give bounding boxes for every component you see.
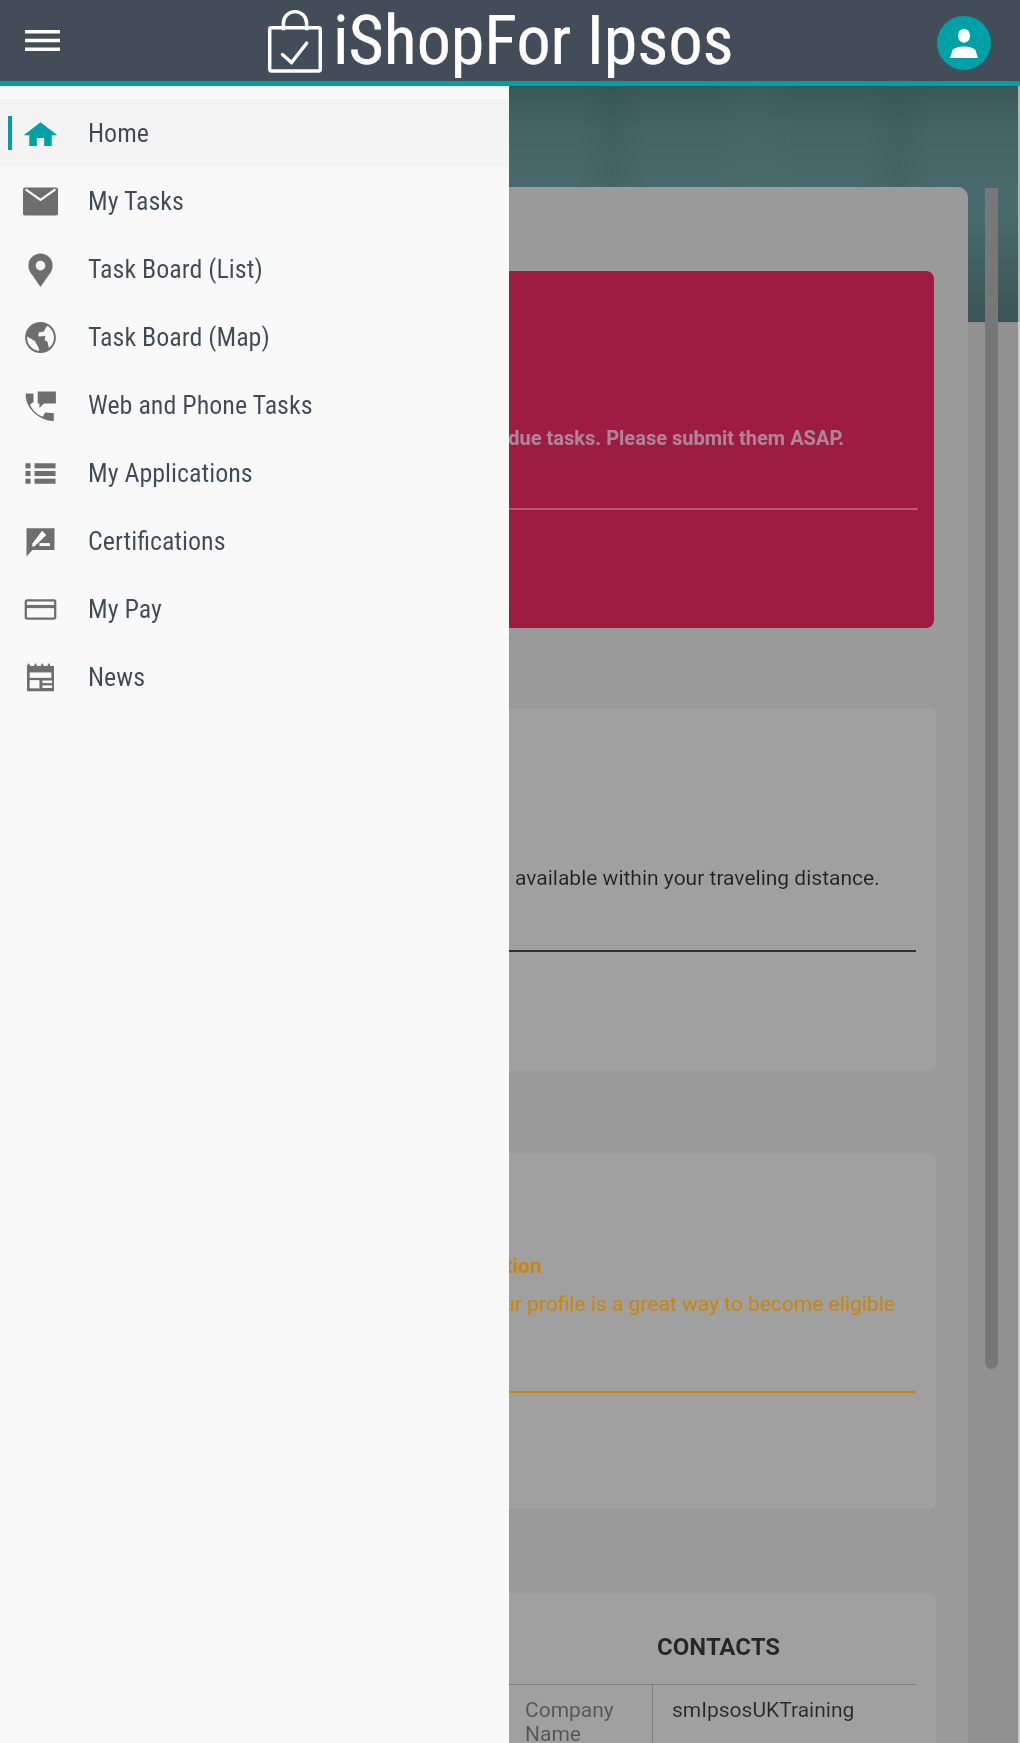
staticText: CONTACTS [657,1633,781,1661]
button[interactable]: Home [0,99,509,167]
staticText: Certifications [88,526,226,556]
button[interactable]: My Tasks [0,167,509,235]
button[interactable]: My Pay [0,575,509,643]
staticText: iShopFor Ipsos [333,1,734,81]
staticText: You have 4 overdue tasks. Please submit … [366,426,845,449]
staticText: smIpsosUKTraining [672,1698,855,1723]
button[interactable]: Certifications [0,507,509,575]
staticText: Adding certifications to your profile is… [259,1292,895,1317]
button[interactable]: Web and Phone Tasks [0,371,509,439]
button[interactable]: News [0,643,509,711]
staticText: Task Board (List) [88,254,263,284]
staticText: Complete Certification [328,1254,542,1279]
staticText: My Tasks [88,186,184,216]
staticText: Web and Phone Tasks [88,390,313,420]
staticText: My Pay [88,594,162,624]
staticText: Task Board (Map) [88,322,270,352]
staticText: Company Name [525,1698,614,1743]
button[interactable]: My Applications [0,439,509,507]
staticText: Home [88,118,149,148]
staticText: There are 0 tasks available within your … [349,866,880,891]
button[interactable]: Task Board (Map) [0,303,509,371]
staticText: My Applications [88,458,253,488]
button[interactable]: Task Board (List) [0,235,509,303]
button[interactable]: Profile [937,16,991,70]
button[interactable]: Open navigation menu [8,8,77,74]
staticText: News [88,662,146,692]
